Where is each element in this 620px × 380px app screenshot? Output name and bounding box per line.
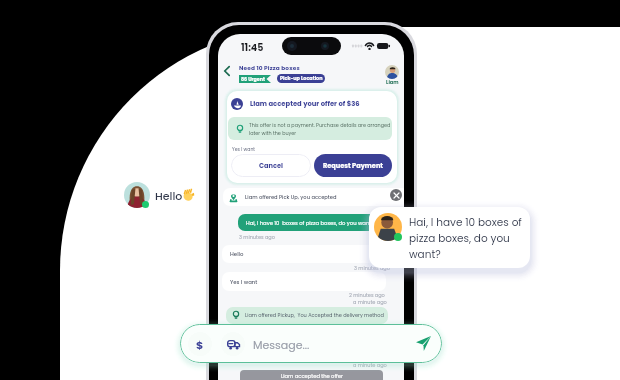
staticText: Hai, I have 10 boxes of pizza boxes, do … (409, 215, 527, 262)
staticText: Liam accepted the offer (281, 373, 343, 380)
staticText: 3 minutes ago (354, 265, 390, 272)
button[interactable]: Cancel (231, 154, 311, 177)
button[interactable]: Request Payment (314, 154, 392, 177)
staticText: 2 minutes ago (349, 292, 385, 299)
staticText: $ (196, 337, 204, 352)
staticText: 86 Urgent (241, 76, 266, 83)
button[interactable]: Close (390, 189, 402, 201)
button[interactable]: Pick-up Location (277, 74, 325, 83)
staticText: a minute ago (353, 362, 387, 369)
staticText: Yes I want (230, 278, 258, 286)
staticText: Request Payment (323, 161, 384, 170)
button[interactable]: Back (219, 63, 235, 79)
staticText: 11:45 (241, 41, 264, 54)
staticText: Hai, I have 10 boxes of pizza boxes, do … (246, 219, 375, 226)
staticText: Hello (230, 250, 244, 258)
staticText: Liam offered Pick Up, you accepted (245, 194, 337, 201)
staticText: Liam (386, 79, 399, 86)
staticText: Yes I want (232, 146, 255, 152)
staticText: a minute ago (353, 299, 387, 306)
button[interactable]: Send money (188, 332, 212, 356)
staticText: Message... (253, 337, 310, 352)
staticText: Hello (155, 188, 183, 203)
staticText: This offer is not a payment. Purchase de… (249, 122, 392, 136)
button[interactable]: Send (412, 332, 435, 355)
staticText: Cancel (259, 161, 283, 170)
button[interactable]: Delivery options (221, 332, 245, 356)
staticText: 3 minutes ago (239, 234, 275, 241)
staticText: Need 10 Pizza boxes (239, 64, 300, 72)
staticText: Liam accepted your offer of $36 (250, 99, 360, 109)
staticText: Liam offered Pickup, You Accepted the de… (245, 312, 384, 319)
staticText: Pick-up Location (280, 75, 323, 82)
